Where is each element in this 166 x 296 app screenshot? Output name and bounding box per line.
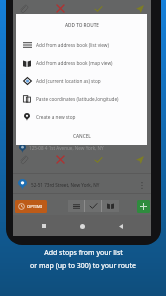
button[interactable]: Home (74, 218, 90, 234)
button[interactable]: Map view (102, 200, 118, 212)
button[interactable]: List view (68, 200, 84, 212)
button[interactable]: Confirm (92, 153, 105, 166)
button[interactable]: 52-51 73rd Street, New York, NY (13, 176, 151, 193)
button[interactable]: OPTIMIZE (15, 200, 47, 213)
staticText: Paste coordinates (latitude,longitude) (36, 96, 119, 102)
staticText: Add from address book (list view) (36, 42, 109, 48)
button[interactable]: Send (133, 2, 146, 15)
staticText: 52-51 73rd Street, New York, NY (31, 182, 100, 188)
button[interactable]: Add from address book (map view) (16, 54, 147, 72)
button[interactable]: Recents (36, 218, 52, 234)
button[interactable]: Create a new stop (16, 108, 147, 126)
staticText: Add stops from your list (44, 248, 123, 258)
staticText: 125-08 4 1st Avenue, New York, NY (29, 145, 104, 151)
button[interactable]: Confirm (85, 200, 101, 212)
staticText: CANCEL (73, 133, 91, 139)
button[interactable]: Back (113, 218, 129, 234)
staticText: Add from address book (map view) (36, 60, 113, 66)
staticText: OPTIMIZE (27, 204, 44, 210)
button[interactable]: CANCEL (67, 130, 97, 142)
button[interactable]: Paste coordinates (latitude,longitude) (16, 90, 147, 108)
button[interactable]: Send (133, 153, 146, 166)
button[interactable]: Cancel (54, 2, 67, 15)
staticText: Create a new stop (36, 114, 76, 120)
button[interactable]: Add stop (137, 200, 150, 213)
button[interactable]: Attach (17, 153, 30, 166)
staticText: or map (up to 300) to your route (30, 261, 136, 271)
staticText: Add (current location as) stop (36, 78, 101, 84)
button[interactable]: Cancel (54, 153, 67, 166)
staticText: ADD TO ROUTE (65, 22, 99, 28)
button[interactable]: More options (137, 180, 147, 190)
button[interactable]: Add (current location as) stop (16, 72, 147, 90)
button[interactable]: Confirm (92, 2, 105, 15)
button[interactable]: Attach (17, 2, 30, 15)
button[interactable]: Add from address book (list view) (16, 36, 147, 54)
